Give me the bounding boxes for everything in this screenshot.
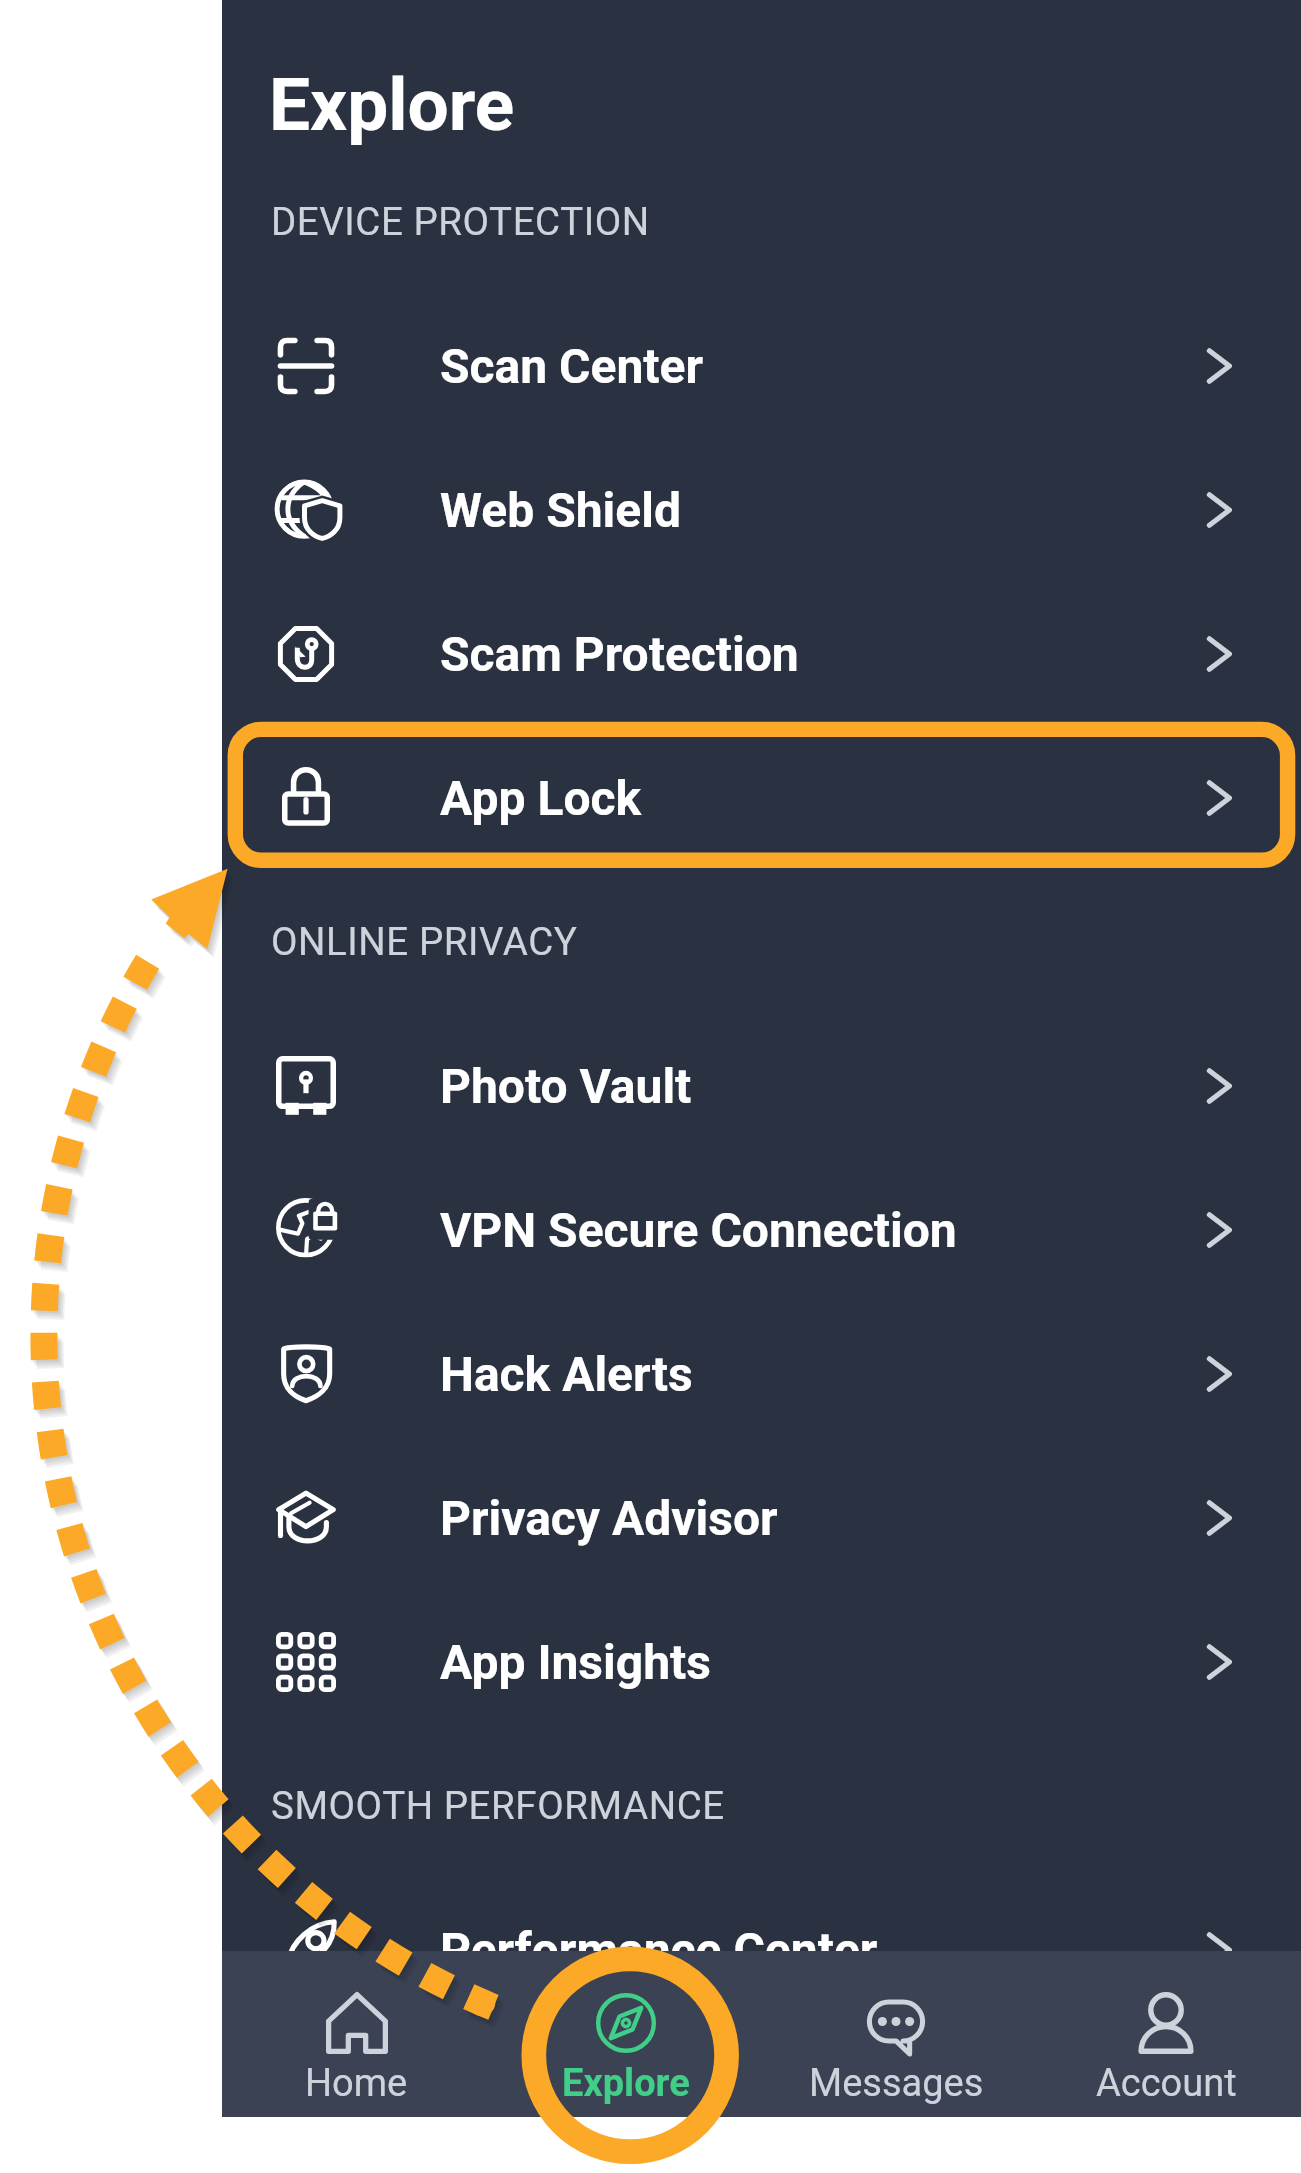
staticText: Scan Center bbox=[440, 338, 704, 394]
staticText: Explore bbox=[562, 2061, 690, 2106]
button[interactable]: Home bbox=[222, 1951, 491, 2117]
button[interactable]: Account bbox=[1031, 1951, 1301, 2117]
staticText: Privacy Advisor bbox=[440, 1490, 778, 1546]
button[interactable]: Scan Center bbox=[222, 294, 1301, 438]
button[interactable]: Photo Vault bbox=[222, 1014, 1301, 1158]
button[interactable]: Hack Alerts bbox=[222, 1302, 1301, 1446]
button[interactable]: Scam Protection bbox=[222, 582, 1301, 726]
button[interactable]: Messages bbox=[761, 1951, 1031, 2117]
staticText: Hack Alerts bbox=[440, 1346, 693, 1402]
staticText: App Lock bbox=[440, 770, 642, 826]
staticText: Explore bbox=[269, 62, 515, 148]
staticText: SMOOTH PERFORMANCE bbox=[271, 1783, 725, 1828]
staticText: Web Shield bbox=[440, 482, 681, 538]
staticText: Messages bbox=[809, 2061, 984, 2106]
button[interactable]: Explore bbox=[491, 1951, 761, 2117]
staticText: Scam Protection bbox=[440, 626, 799, 682]
button[interactable]: VPN Secure Connection bbox=[222, 1158, 1301, 1302]
staticText: Home bbox=[305, 2061, 408, 2106]
button[interactable]: Web Shield bbox=[222, 438, 1301, 582]
button[interactable]: App Lock bbox=[222, 726, 1301, 870]
staticText: VPN Secure Connection bbox=[440, 1202, 957, 1258]
button[interactable]: App Insights bbox=[222, 1590, 1301, 1734]
staticText: App Insights bbox=[440, 1634, 711, 1690]
other: Home bbox=[326, 1992, 388, 2054]
other: Account bbox=[1135, 1992, 1197, 2054]
staticText: DEVICE PROTECTION bbox=[271, 199, 650, 244]
staticText: Performance Center bbox=[440, 1922, 878, 1978]
button[interactable]: Performance Center bbox=[222, 1878, 1301, 2022]
staticText: Photo Vault bbox=[440, 1058, 692, 1114]
button[interactable]: Privacy Advisor bbox=[222, 1446, 1301, 1590]
staticText: ONLINE PRIVACY bbox=[271, 919, 578, 964]
other: Explore bbox=[595, 1992, 657, 2054]
staticText: Account bbox=[1096, 2061, 1237, 2106]
other: Messages bbox=[865, 1992, 927, 2054]
